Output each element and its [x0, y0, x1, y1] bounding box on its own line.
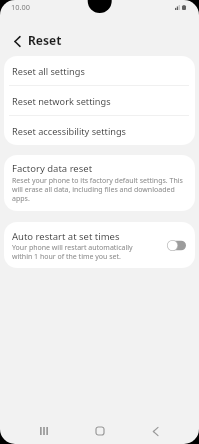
staticText: Reset your phone to its factory default …	[12, 176, 186, 203]
button[interactable]: Navigate up	[5, 29, 29, 53]
button[interactable]: Reset all settings	[4, 56, 195, 85]
staticText: Reset	[28, 32, 62, 48]
staticText: Auto restart at set times	[12, 230, 120, 243]
button[interactable]: Factory data reset	[4, 155, 195, 211]
button[interactable]: Home	[84, 415, 116, 444]
button[interactable]: Recent apps	[28, 415, 60, 444]
staticText: Reset accessibility settings	[12, 125, 126, 138]
staticText: Your phone will restart automatically wi…	[12, 243, 153, 261]
staticText: Reset all settings	[12, 65, 85, 78]
button[interactable]: Auto restart at set times toggle	[167, 240, 186, 251]
button[interactable]: Reset network settings	[4, 86, 195, 115]
button[interactable]: Reset accessibility settings	[4, 116, 195, 145]
staticText: Reset network settings	[12, 95, 111, 108]
staticText: Factory data reset	[12, 162, 93, 175]
staticText: 10.00	[11, 2, 30, 12]
button[interactable]: Auto restart at set times	[4, 222, 195, 268]
button[interactable]: Back	[139, 415, 171, 444]
